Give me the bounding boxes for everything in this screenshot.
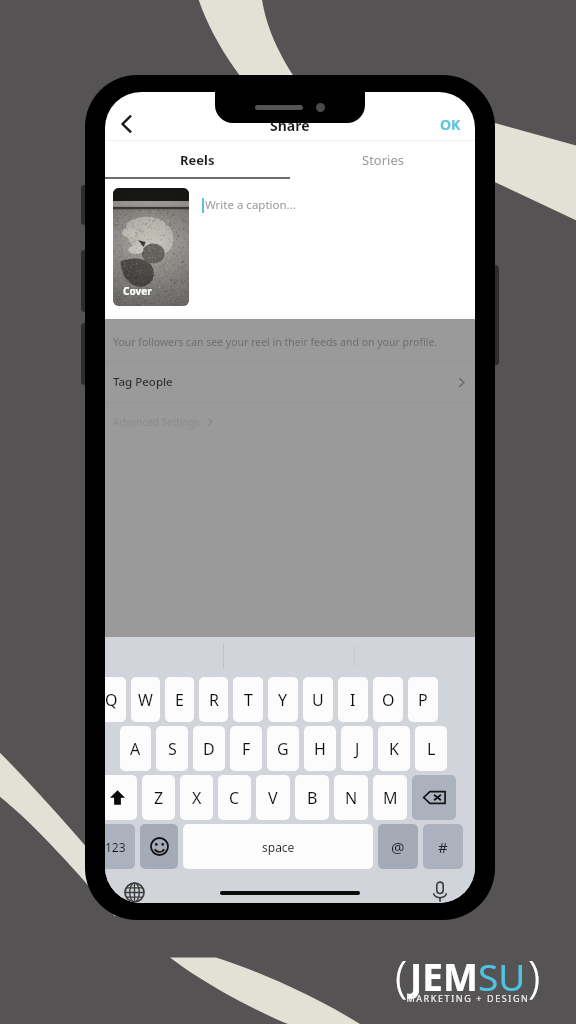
- button[interactable]: Shift: [105, 775, 137, 820]
- staticText: A: [130, 738, 141, 760]
- staticText: @: [391, 837, 405, 857]
- staticText: SU: [478, 951, 526, 1001]
- staticText: Z: [154, 787, 164, 809]
- button[interactable]: @: [378, 824, 418, 869]
- button[interactable]: Z: [142, 775, 175, 820]
- staticText: JEM: [410, 951, 478, 1001]
- staticText: Tag People: [113, 374, 173, 390]
- staticText: B: [307, 787, 318, 809]
- staticText: J: [355, 738, 360, 760]
- button[interactable]: Backspace: [412, 775, 456, 820]
- staticText: W: [138, 689, 153, 711]
- button[interactable]: S: [156, 726, 188, 771]
- staticText: O: [382, 689, 395, 711]
- staticText: OK: [440, 115, 461, 134]
- staticText: R: [209, 689, 219, 711]
- button[interactable]: #: [423, 824, 463, 869]
- button[interactable]: M: [373, 775, 407, 820]
- staticText: ): [528, 946, 541, 1006]
- button[interactable]: Y: [268, 677, 298, 722]
- staticText: I: [350, 689, 356, 711]
- button[interactable]: Q: [105, 677, 126, 722]
- staticText: V: [268, 787, 278, 809]
- staticText: X: [192, 787, 202, 809]
- staticText: K: [389, 738, 399, 760]
- staticText: space: [262, 839, 295, 855]
- staticText: Y: [278, 689, 288, 711]
- staticText: (: [395, 946, 408, 1006]
- staticText: D: [203, 738, 215, 760]
- button[interactable]: V: [256, 775, 290, 820]
- staticText: H: [314, 738, 326, 760]
- button[interactable]: W: [131, 677, 160, 722]
- button[interactable]: 123: [105, 824, 135, 869]
- button[interactable]: Change keyboard language: [117, 876, 151, 903]
- staticText: #: [438, 837, 448, 857]
- button[interactable]: L: [415, 726, 447, 771]
- staticText: T: [244, 689, 253, 711]
- button[interactable]: Dictation: [423, 876, 457, 903]
- staticText: N: [345, 787, 358, 809]
- button[interactable]: Reels: [105, 141, 290, 179]
- button[interactable]: Cover: [113, 188, 189, 306]
- button[interactable]: Tag People: [105, 362, 475, 402]
- staticText: P: [418, 689, 428, 711]
- staticText: U: [312, 689, 324, 711]
- staticText: MARKETING + DESIGN: [406, 992, 530, 1004]
- button[interactable]: H: [304, 726, 336, 771]
- staticText: E: [175, 689, 184, 711]
- staticText: L: [427, 738, 436, 760]
- staticText: Your followers can see your reel in thei…: [113, 335, 438, 349]
- button[interactable]: X: [180, 775, 213, 820]
- staticText: F: [242, 738, 251, 760]
- button[interactable]: OK: [430, 109, 471, 140]
- button[interactable]: N: [334, 775, 368, 820]
- button[interactable]: B: [295, 775, 329, 820]
- button[interactable]: Back: [105, 102, 149, 146]
- button[interactable]: U: [303, 677, 333, 722]
- button[interactable]: C: [218, 775, 251, 820]
- staticText: 123: [105, 839, 126, 855]
- staticText: Stories: [362, 151, 404, 169]
- staticText: Advanced Settings: [113, 415, 200, 429]
- button[interactable]: O: [373, 677, 403, 722]
- staticText: M: [383, 787, 398, 809]
- button[interactable]: space: [183, 824, 373, 869]
- staticText: C: [229, 787, 240, 809]
- staticText: S: [168, 738, 177, 760]
- button[interactable]: G: [267, 726, 299, 771]
- button[interactable]: Stories: [290, 141, 475, 179]
- button[interactable]: A: [120, 726, 151, 771]
- button[interactable]: R: [199, 677, 228, 722]
- button[interactable]: F: [230, 726, 262, 771]
- staticText: G: [277, 738, 289, 760]
- staticText: Reels: [180, 151, 215, 169]
- button[interactable]: E: [165, 677, 194, 722]
- button[interactable]: P: [408, 677, 438, 722]
- button[interactable]: T: [233, 677, 263, 722]
- button[interactable]: J: [341, 726, 373, 771]
- button[interactable]: K: [378, 726, 410, 771]
- button[interactable]: Emoji: [140, 824, 178, 869]
- staticText: Share: [270, 116, 310, 135]
- staticText: Write a caption...: [205, 197, 296, 213]
- button[interactable]: D: [193, 726, 225, 771]
- staticText: Q: [105, 689, 118, 711]
- staticText: Cover: [123, 284, 152, 298]
- button[interactable]: I: [338, 677, 368, 722]
